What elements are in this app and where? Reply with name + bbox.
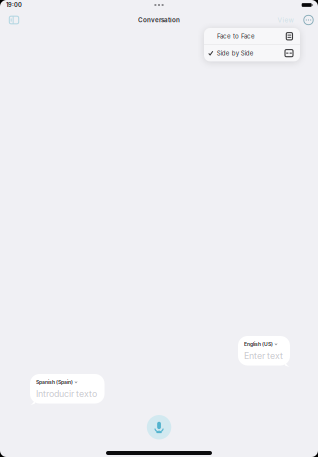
button[interactable]: Show Sidebar xyxy=(4,10,24,30)
button[interactable]: English (US) xyxy=(238,336,290,368)
button[interactable]: Face to Face xyxy=(204,28,300,44)
staticText: Introducir texto xyxy=(36,388,97,399)
button[interactable]: Spanish (Spain) xyxy=(30,374,104,406)
staticText: 19:00 xyxy=(6,1,22,8)
staticText: Side by Side xyxy=(217,49,254,57)
staticText: View xyxy=(277,16,293,24)
staticText: Conversation xyxy=(138,16,180,24)
staticText: Enter text xyxy=(244,350,283,361)
button[interactable]: Record xyxy=(147,415,171,439)
button[interactable]: More xyxy=(301,13,315,27)
button[interactable]: View xyxy=(274,12,296,28)
staticText: Spanish (Spain) xyxy=(36,379,73,385)
staticText: Face to Face xyxy=(217,32,255,40)
button[interactable]: Side by Side xyxy=(204,45,300,61)
staticText: English (US) xyxy=(244,341,273,347)
